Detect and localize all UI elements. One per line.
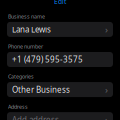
staticText: +1 (479) 595-3575 <box>12 54 83 65</box>
button[interactable]: Edit <box>51 0 69 7</box>
button[interactable]: Add address <box>7 112 113 120</box>
staticText: › <box>105 113 108 120</box>
staticText: Edit <box>54 0 66 6</box>
staticText: › <box>105 23 108 36</box>
button[interactable]: Other Business <box>7 82 113 97</box>
staticText: Lana Lewis <box>12 24 51 35</box>
button[interactable]: +1 (479) 595-3575 <box>7 52 113 67</box>
staticText: Address <box>8 103 28 110</box>
button[interactable]: Lana Lewis <box>7 22 113 37</box>
staticText: Phone number <box>8 43 43 50</box>
staticText: › <box>105 83 108 96</box>
staticText: Business name <box>8 13 45 20</box>
staticText: Categories <box>8 73 34 80</box>
staticText: Other Business <box>12 84 70 95</box>
staticText: Add address <box>12 114 59 120</box>
